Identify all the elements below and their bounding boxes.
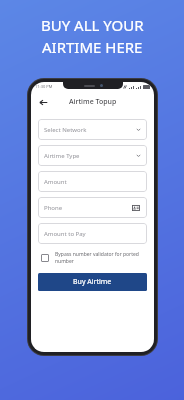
button[interactable]: Pick contact — [131, 203, 141, 213]
staticText: Airtime Topup — [69, 97, 117, 107]
staticText: BUY ALL YOUR — [41, 15, 144, 35]
staticText: Select Network — [44, 126, 87, 134]
staticText: AIRTIME HERE — [42, 37, 143, 57]
staticText: Airtime Type — [44, 152, 80, 160]
button[interactable]: Buy Airtime — [38, 273, 147, 291]
staticText: Buy Airtime — [73, 277, 112, 287]
staticText: Bypass number validator for ported numbe… — [55, 251, 146, 265]
button[interactable]: Select Network — [38, 119, 147, 140]
button[interactable]: Amount — [38, 171, 147, 192]
staticText: 11:30 PM — [35, 84, 53, 89]
button[interactable]: Bypass number validator for ported numbe… — [38, 251, 147, 265]
staticText: Amount — [44, 178, 67, 186]
button[interactable]: Back — [36, 95, 50, 109]
staticText: Amount to Pay — [44, 230, 86, 238]
button[interactable]: Airtime Type — [38, 145, 147, 166]
staticText: Phone — [44, 204, 63, 212]
button[interactable]: Phone — [38, 197, 147, 218]
button[interactable]: Amount to Pay — [38, 223, 147, 244]
